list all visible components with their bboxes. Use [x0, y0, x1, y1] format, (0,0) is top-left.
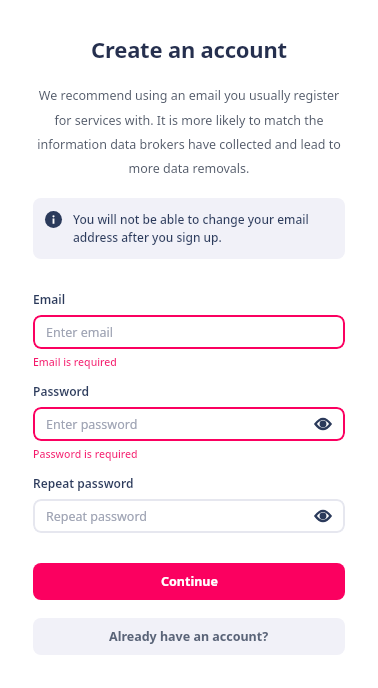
button[interactable]: Repeat password [33, 499, 345, 533]
staticText: Password [33, 383, 90, 399]
staticText: Repeat password [33, 475, 134, 491]
other: Information [45, 211, 62, 228]
button[interactable]: Continue [33, 563, 345, 600]
staticText: Password is required [33, 447, 138, 461]
button[interactable]: Already have an account? [33, 618, 345, 655]
staticText: Already have an account? [109, 628, 269, 645]
staticText: You will not be able to change your emai… [73, 211, 333, 246]
button[interactable]: Enter password [33, 407, 345, 441]
staticText: Enter password [46, 416, 138, 433]
staticText: Email [33, 291, 66, 307]
button[interactable]: Enter email [33, 315, 345, 349]
staticText: We recommend using an email you usually … [33, 87, 345, 176]
staticText: Enter email [46, 324, 113, 341]
staticText: Email is required [33, 355, 117, 369]
button[interactable]: Show Repeat password [314, 507, 332, 525]
staticText: Repeat password [46, 508, 148, 525]
staticText: Continue [161, 573, 218, 590]
button[interactable]: Show Password [314, 415, 332, 433]
staticText: Create an account [33, 34, 345, 64]
